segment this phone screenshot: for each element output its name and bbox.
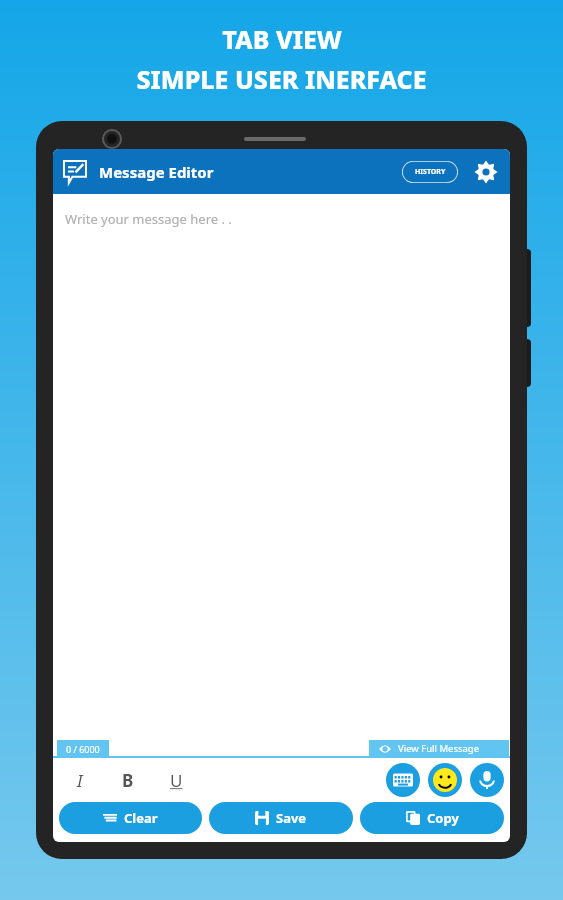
staticText: Write your message here . .	[65, 210, 232, 228]
button[interactable]: Emoji	[428, 763, 462, 797]
staticText: Save	[276, 809, 307, 827]
staticText: Clear	[124, 809, 158, 827]
button[interactable]: B	[115, 767, 141, 793]
staticText: HISTORY	[415, 167, 446, 177]
staticText: TAB VIEW	[222, 22, 342, 56]
button[interactable]: Clear	[59, 802, 202, 834]
staticText: I	[77, 769, 83, 792]
staticText: 0 / 6000	[66, 743, 100, 755]
button[interactable]: Save	[209, 802, 353, 834]
button[interactable]: U	[163, 767, 189, 793]
button[interactable]: HISTORY	[402, 161, 458, 183]
button[interactable]: I	[67, 767, 93, 793]
staticText: Message Editor	[99, 162, 214, 182]
staticText: View Full Message	[398, 742, 480, 755]
button[interactable]: Keyboard	[386, 763, 420, 797]
staticText: U	[170, 769, 183, 792]
button[interactable]: Message Editor	[63, 160, 87, 184]
button[interactable]: Voice input	[470, 763, 504, 797]
button[interactable]: View Full Message	[369, 740, 509, 757]
staticText: B	[122, 769, 134, 792]
button[interactable]: Settings	[472, 158, 500, 186]
button[interactable]: 0 / 6000	[57, 740, 109, 757]
staticText: Copy	[427, 809, 459, 827]
button[interactable]: Copy	[360, 802, 504, 834]
staticText: SIMPLE USER INERFACE	[136, 62, 427, 96]
